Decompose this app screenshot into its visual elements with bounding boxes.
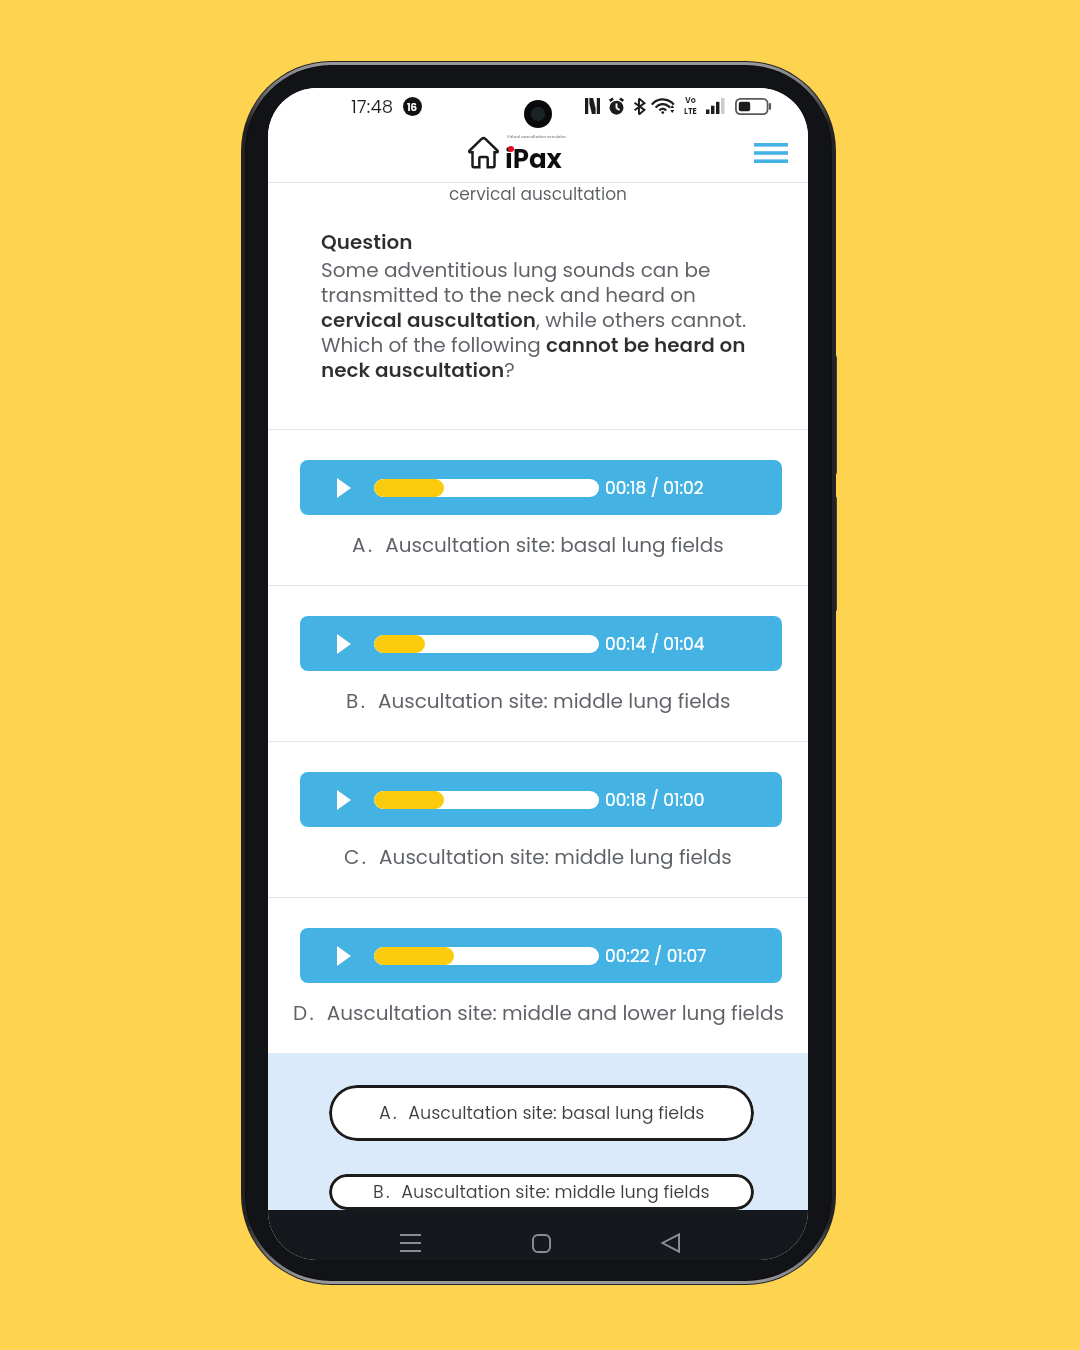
staticText: Question bbox=[321, 228, 413, 256]
button[interactable]: Play C. audio bbox=[300, 772, 782, 827]
staticText: 17:48 bbox=[351, 94, 394, 119]
staticText: C. Auscultation site: middle lung fields bbox=[344, 843, 732, 871]
staticText: 00:18 / 01:02 bbox=[605, 476, 704, 500]
staticText: D. Auscultation site: middle and lower l… bbox=[293, 999, 784, 1027]
staticText: Some adventitious lung sounds can be tra… bbox=[321, 256, 766, 384]
staticText: LTE bbox=[684, 106, 697, 117]
staticText: Vo bbox=[685, 95, 696, 106]
button[interactable]: Home bbox=[519, 1221, 563, 1260]
staticText: B. Auscultation site: middle lung fields bbox=[346, 687, 731, 715]
staticText: 00:14 / 01:04 bbox=[605, 632, 705, 656]
button[interactable]: Play D. audio bbox=[300, 928, 782, 983]
button[interactable]: Recents bbox=[388, 1221, 432, 1260]
staticText: 00:22 / 01:07 bbox=[605, 944, 707, 968]
button[interactable]: B. Auscultation site: middle lung fields bbox=[329, 1174, 754, 1210]
staticText: A. Auscultation site: basal lung fields bbox=[352, 531, 724, 559]
button[interactable]: A. Auscultation site: basal lung fields bbox=[329, 1085, 754, 1141]
button[interactable]: Open menu bbox=[744, 131, 798, 175]
staticText: cervical auscultation bbox=[449, 182, 627, 206]
staticText: Virtual auscultation simulator bbox=[507, 134, 567, 140]
staticText: iPax bbox=[505, 141, 562, 177]
button[interactable]: Play A. audio bbox=[300, 460, 782, 515]
staticText: 16 bbox=[407, 100, 418, 114]
staticText: B. Auscultation site: middle lung fields bbox=[373, 1180, 710, 1205]
staticText: 00:18 / 01:00 bbox=[605, 788, 705, 812]
button[interactable]: Back bbox=[648, 1221, 692, 1260]
staticText: A. Auscultation site: basal lung fields bbox=[379, 1101, 705, 1126]
button[interactable]: Play B. audio bbox=[300, 616, 782, 671]
